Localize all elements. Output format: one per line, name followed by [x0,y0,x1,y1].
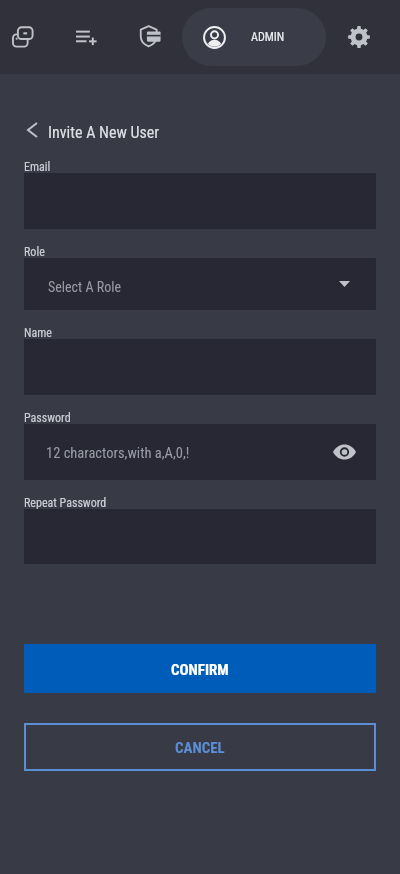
staticText: CANCEL [175,739,225,757]
button[interactable]: Security [128,14,172,58]
staticText: Email [24,160,51,174]
staticText: CONFIRM [171,661,229,679]
button[interactable]: Back [18,120,160,145]
button[interactable]: Duplicate [0,14,44,58]
button[interactable]: Settings [337,15,381,59]
staticText: Role [24,245,45,259]
other: Back [18,120,43,145]
button[interactable]: CONFIRM [24,644,376,693]
button[interactable]: ADMIN [182,8,326,66]
button[interactable]: Select A Role [24,258,376,310]
staticText: Name [24,326,52,340]
button[interactable]: CANCEL [24,723,376,771]
button[interactable]: 12 charactors,with a,A,0,! [24,424,376,480]
staticText: Invite A New User [48,123,160,142]
staticText: ADMIN [251,30,285,44]
staticText: 12 charactors,with a,A,0,! [46,445,190,462]
staticText: Select A Role [48,279,121,295]
staticText: Password [24,411,71,425]
button[interactable]: Add to list [64,14,108,58]
button[interactable]: Show password [332,440,356,464]
staticText: Repeat Password [24,496,107,510]
